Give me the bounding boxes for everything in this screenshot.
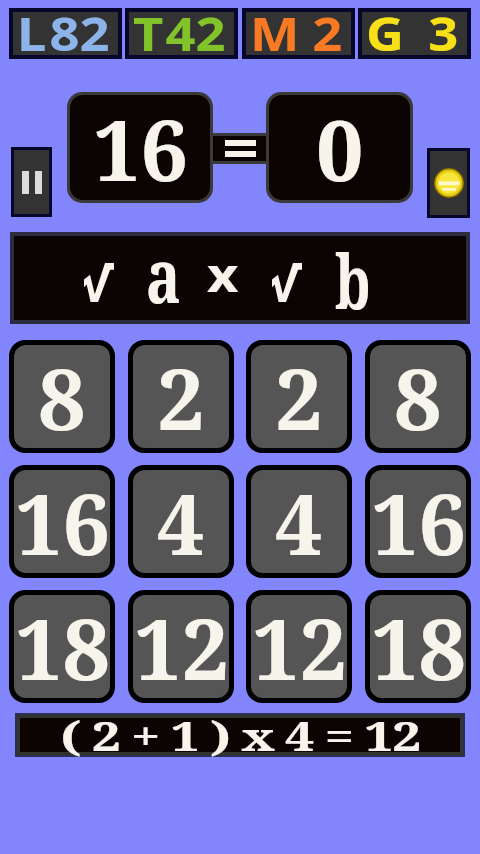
staticText: G [366,2,405,65]
staticText: 3 [428,2,459,65]
staticText: 12 [252,595,347,698]
staticText: 2 [157,345,205,448]
button[interactable]: Coins [430,151,467,215]
staticText: T [133,2,164,65]
staticText: 12 [134,595,229,698]
button[interactable]: 16 [14,470,110,573]
button[interactable]: L [13,12,118,55]
button[interactable]: 18 [14,595,110,698]
staticText: M [250,2,300,65]
staticText: 0 [316,95,364,200]
staticText: a [146,224,181,325]
button[interactable]: 8 [370,345,466,448]
button[interactable]: 8 [14,345,110,448]
button[interactable]: 4 [251,470,347,573]
staticText: 18 [15,595,110,698]
button[interactable]: 4 [133,470,229,573]
staticText: 8 [38,345,86,448]
button[interactable]: 18 [370,595,466,698]
button[interactable]: 12 [251,595,347,698]
staticText: ( 2 + 1 ) x 4 = 12 [60,709,421,762]
button[interactable]: 2 [251,345,347,448]
button[interactable]: M [246,12,351,55]
button[interactable]: 12 [133,595,229,698]
staticText: 16 [15,470,110,573]
staticText: 4 [157,470,205,573]
button[interactable]: 16 [70,95,210,200]
staticText: b [335,230,371,331]
staticText: L [17,2,47,65]
button[interactable]: G [362,12,467,55]
staticText: 2 [275,345,323,448]
button[interactable]: 16 [370,470,466,573]
staticText: 42 [166,2,226,65]
button[interactable]: 2 [133,345,229,448]
staticText: x [207,243,239,306]
button[interactable]: Pause [14,150,49,214]
staticText: 2 [312,2,343,65]
staticText: 18 [371,595,466,698]
button[interactable]: T [129,12,234,55]
staticText: 82 [50,2,110,65]
staticText: 16 [93,95,188,200]
button[interactable]: 0 [269,95,410,200]
staticText: 4 [275,470,323,573]
staticText: 8 [394,345,442,448]
staticText: 16 [371,470,466,573]
